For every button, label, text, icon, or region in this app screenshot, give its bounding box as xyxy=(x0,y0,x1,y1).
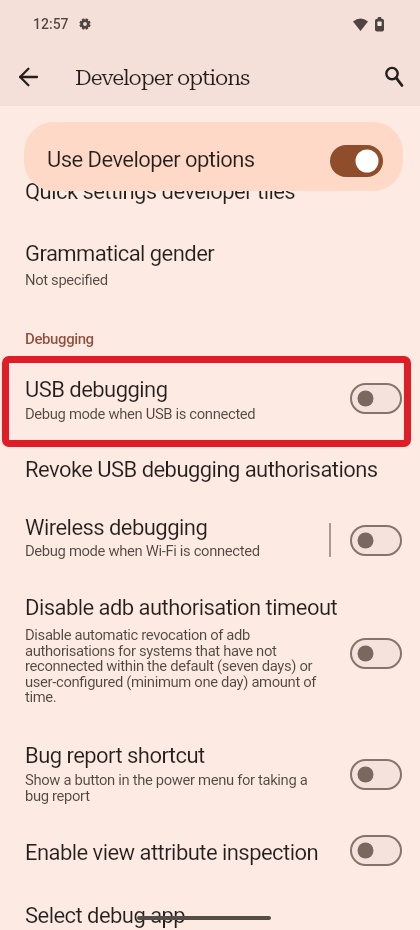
button[interactable] xyxy=(0,192,420,214)
button[interactable] xyxy=(0,443,420,497)
button[interactable] xyxy=(381,65,405,89)
button[interactable] xyxy=(0,228,420,300)
button[interactable]: Use Developer options xyxy=(24,122,403,191)
staticText: USB debugging xyxy=(25,377,168,403)
staticText: Debug mode when Wi-Fi is connected xyxy=(25,542,260,559)
button[interactable] xyxy=(0,890,420,930)
staticText: Show a button in the power menu for taki… xyxy=(25,771,308,788)
button[interactable] xyxy=(0,363,420,437)
staticText: Bug report shortcut xyxy=(25,743,205,769)
button[interactable] xyxy=(350,525,402,556)
button[interactable] xyxy=(0,822,420,884)
button[interactable] xyxy=(350,759,402,790)
staticText: Wireless debugging xyxy=(25,515,208,541)
button[interactable] xyxy=(350,383,402,414)
button[interactable] xyxy=(0,584,420,718)
staticText: 12:57 xyxy=(33,16,69,32)
button[interactable] xyxy=(0,731,420,813)
staticText: Select debug app xyxy=(25,903,186,929)
button[interactable] xyxy=(330,145,383,177)
button[interactable] xyxy=(0,503,420,577)
staticText: Developer options xyxy=(75,65,250,90)
button[interactable] xyxy=(350,835,402,866)
staticText: Grammatical gender xyxy=(25,241,215,267)
staticText: time. xyxy=(25,688,57,705)
staticText: Revoke USB debugging authorisations xyxy=(25,457,378,483)
staticText: reconnected within the default (seven da… xyxy=(25,657,313,674)
staticText: Use Developer options xyxy=(47,147,255,173)
staticText: Debugging xyxy=(25,330,94,348)
staticText: Enable view attribute inspection xyxy=(25,840,319,866)
button[interactable] xyxy=(17,66,41,90)
staticText: Quick settings developer tiles xyxy=(25,179,296,205)
staticText: Debug mode when USB is connected xyxy=(25,405,256,422)
staticText: user-configured (minimum one day) amount… xyxy=(25,673,317,690)
staticText: bug report xyxy=(25,787,90,804)
staticText: Disable adb authorisation timeout xyxy=(25,595,338,621)
staticText: Disable automatic revocation of adb xyxy=(25,626,250,643)
staticText: Not specified xyxy=(25,271,108,288)
button[interactable] xyxy=(350,638,402,669)
staticText: authorisations for systems that have not xyxy=(25,642,277,659)
